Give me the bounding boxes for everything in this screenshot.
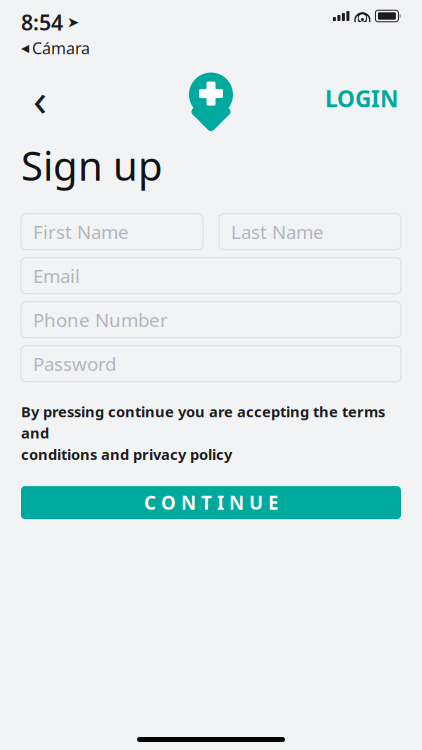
staticText: ➤ <box>67 14 79 30</box>
staticText: ◀ <box>21 42 29 54</box>
staticText: Last Name <box>231 219 324 244</box>
staticText: LOGIN <box>325 83 398 114</box>
staticText: Email <box>33 263 80 288</box>
staticText: First Name <box>33 219 129 244</box>
staticText: ‹ <box>33 68 47 129</box>
staticText: 8:54 <box>21 8 63 36</box>
staticText: Password <box>33 351 116 376</box>
button[interactable]: LOGIN <box>319 77 404 121</box>
button[interactable]: C O N T I N U E <box>21 486 401 519</box>
staticText: C O N T I N U E <box>144 490 278 515</box>
staticText: Sign up <box>21 139 163 192</box>
staticText: Phone Number <box>33 307 168 332</box>
staticText: By pressing continue you are accepting t… <box>21 402 385 464</box>
staticText: Cámara <box>32 37 90 58</box>
button[interactable]: Back <box>18 77 62 121</box>
